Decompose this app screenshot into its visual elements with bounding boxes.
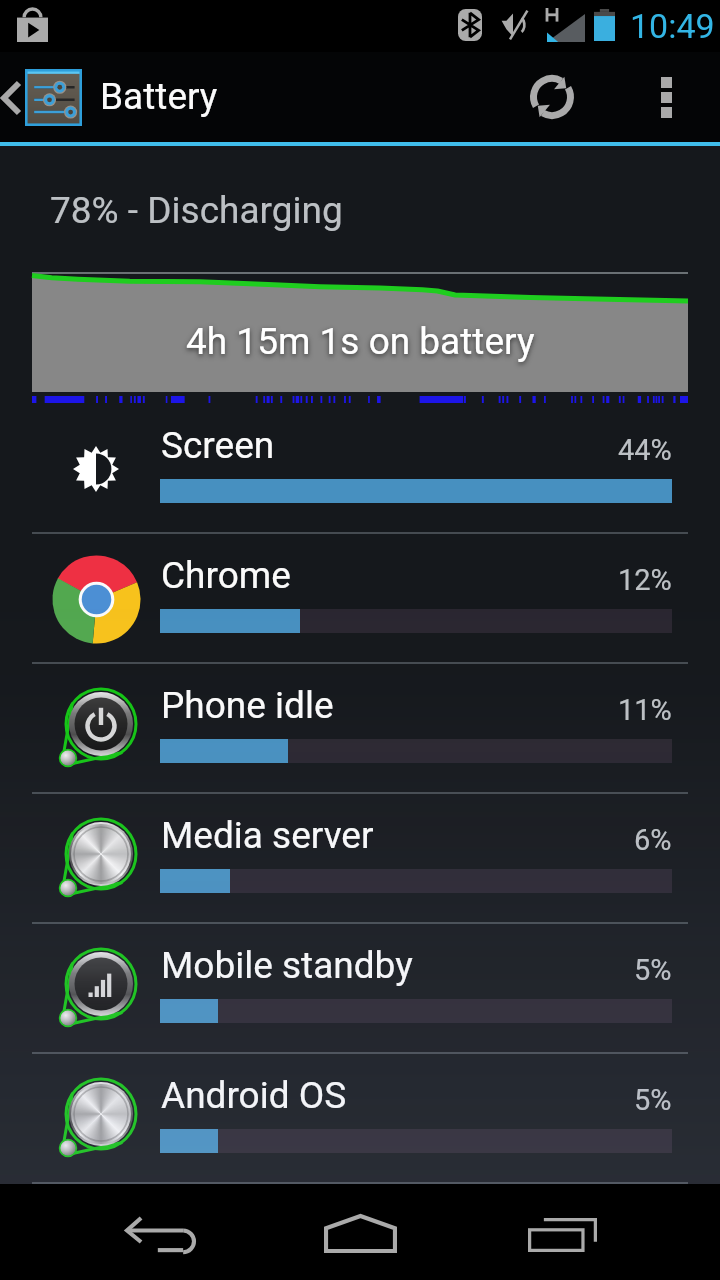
button[interactable]: Phone idle [0,664,720,794]
staticText: Media server [161,814,374,857]
button[interactable]: Recents [482,1184,642,1280]
button[interactable]: Chrome [0,534,720,664]
button[interactable]: Back [80,1184,240,1280]
staticText: 5% [634,1083,672,1117]
button[interactable]: More options [620,52,708,142]
staticText: 4h 15m 1s on battery [186,320,535,363]
staticText: 78% - Discharging [50,189,343,232]
button[interactable]: Screen [0,404,720,534]
button[interactable]: Home [280,1184,440,1280]
staticText: 6% [634,823,672,857]
staticText: Android OS [161,1074,347,1117]
staticText: Phone idle [161,684,334,727]
button[interactable]: Android OS [0,1054,720,1184]
staticText: 11% [618,693,672,727]
staticText: Screen [161,424,275,467]
staticText: Mobile standby [161,944,413,987]
staticText: 12% [618,563,672,597]
button[interactable]: Navigate up [0,69,90,126]
button[interactable]: Media server [0,794,720,924]
staticText: 44% [618,433,672,467]
button[interactable]: Refresh [508,52,596,142]
staticText: Battery [100,75,218,118]
button[interactable]: Mobile standby [0,924,720,1054]
staticText: 10:49 [630,6,715,46]
staticText: 5% [634,953,672,987]
staticText: Chrome [161,554,291,597]
